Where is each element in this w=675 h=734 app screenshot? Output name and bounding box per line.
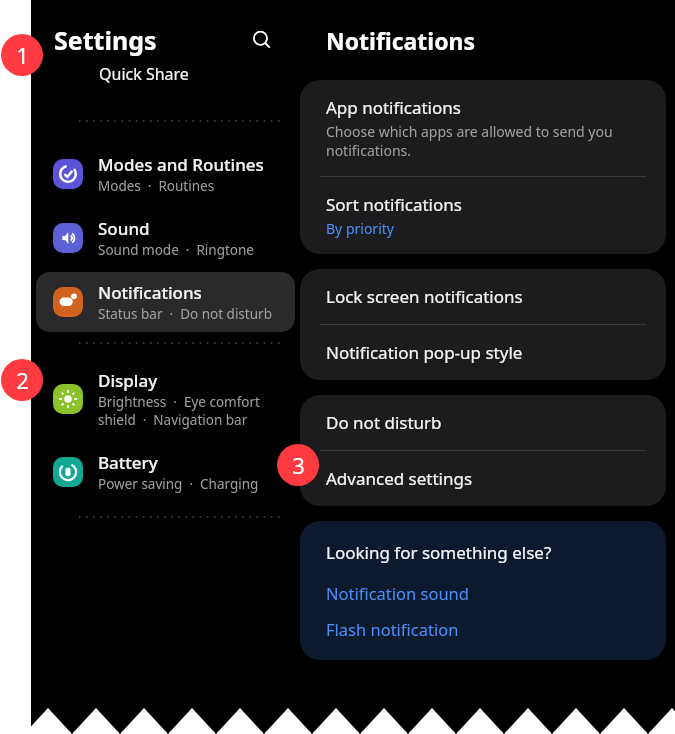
button[interactable]: Lock screen notifications [300,269,666,324]
staticText: 3 [292,450,305,480]
button[interactable]: Quick Share [31,72,300,98]
button[interactable]: Do not disturb [300,395,666,450]
staticText: Sort notifications [326,193,462,216]
staticText: Notifications [326,25,476,56]
staticText: Lock screen notifications [326,285,523,308]
staticText: 1 [16,40,29,70]
staticText: Notifications [98,281,202,304]
staticText: Brightness · Eye comfort shield · Naviga… [98,393,285,429]
staticText: Battery [98,451,158,474]
staticText: Quick Share [99,63,189,85]
button[interactable]: Notification pop-up style [300,325,666,380]
staticText: Looking for something else? [326,541,552,564]
staticText: Do not disturb [326,411,442,434]
staticText: Modes · Routines [98,177,215,195]
button[interactable]: Sound [36,208,295,268]
button[interactable]: Notifications [36,272,295,332]
staticText: App notifications [326,96,461,119]
button[interactable]: Notification sound [326,582,646,604]
staticText: Sound mode · Ringtone [98,241,254,259]
staticText: Choose which apps are allowed to send yo… [326,122,646,160]
button[interactable]: Search [242,20,282,60]
staticText: Flash notification [326,618,459,640]
staticText: Power saving · Charging [98,475,259,493]
button[interactable]: Modes and Routines [36,144,295,204]
staticText: Sound [98,217,150,240]
staticText: Notification pop-up style [326,341,523,364]
staticText: Notification sound [326,582,469,604]
button[interactable]: Battery [36,442,295,502]
button[interactable]: Advanced settings [300,451,666,506]
staticText: By priority [326,219,394,238]
button[interactable]: Flash notification [326,618,646,640]
staticText: Modes and Routines [98,153,264,176]
staticText: Advanced settings [326,467,473,490]
staticText: Status bar · Do not disturb [98,305,272,323]
button[interactable]: Sort notifications [300,177,666,254]
button[interactable]: Display [36,360,295,438]
staticText: Display [98,369,158,392]
staticText: Settings [54,23,157,57]
staticText: 2 [16,365,29,395]
button[interactable]: App notifications [300,80,666,176]
